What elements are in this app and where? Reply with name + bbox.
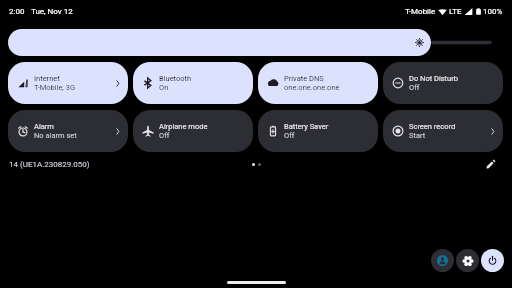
staticText: Start <box>409 131 426 140</box>
button[interactable]: Screen record <box>383 110 503 152</box>
button[interactable]: Settings <box>456 249 479 272</box>
staticText: LTE <box>449 7 462 16</box>
staticText: T-Mobile <box>405 7 436 16</box>
staticText: Airplane mode <box>159 122 208 131</box>
staticText: 100% <box>483 7 503 16</box>
button[interactable]: Do Not Disturb <box>383 62 503 104</box>
button[interactable]: Alarm <box>8 110 128 152</box>
staticText: Tue, Nov 12 <box>31 7 73 16</box>
button[interactable]: Power <box>481 249 504 272</box>
staticText: 2:00 <box>9 7 25 16</box>
staticText: one.one.one.one <box>284 83 340 92</box>
button[interactable]: Airplane mode <box>133 110 253 152</box>
staticText: Do Not Disturb <box>409 74 458 83</box>
staticText: Screen record <box>409 122 456 131</box>
button[interactable]: Battery Saver <box>258 110 378 152</box>
staticText: Off <box>409 83 420 92</box>
staticText: Off <box>284 131 295 140</box>
staticText: Internet <box>34 74 60 83</box>
staticText: T-Mobile, 3G <box>34 83 76 92</box>
button[interactable]: Brightness <box>8 29 504 56</box>
button[interactable]: Edit tiles <box>484 157 498 171</box>
staticText: Bluetooth <box>159 74 192 83</box>
staticText: On <box>159 83 169 92</box>
button[interactable]: Bluetooth <box>133 62 253 104</box>
staticText: Battery Saver <box>284 122 329 131</box>
staticText: No alarm set <box>34 131 77 140</box>
staticText: Private DNS <box>284 74 324 83</box>
staticText: Off <box>159 131 170 140</box>
staticText: Alarm <box>34 122 54 131</box>
staticText: 14 (UE1A.230829.050) <box>9 160 90 169</box>
button[interactable]: Internet <box>8 62 128 104</box>
button[interactable]: Private DNS <box>258 62 378 104</box>
button[interactable]: Switch user <box>431 249 454 272</box>
